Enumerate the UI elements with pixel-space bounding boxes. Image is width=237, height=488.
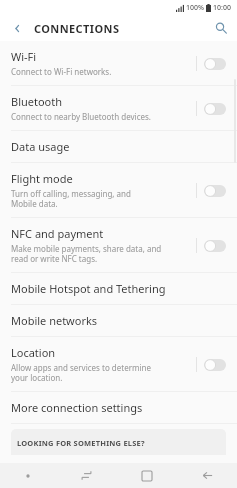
button[interactable]: Back bbox=[0, 15, 34, 41]
button[interactable]: Toggle bbox=[196, 352, 229, 376]
staticText: Turn off calling, messaging, and Mobile … bbox=[11, 188, 131, 209]
button[interactable]: Indicator bbox=[13, 463, 43, 488]
staticText: Make mobile payments, share data, and re… bbox=[11, 243, 162, 264]
staticText: Mobile Hotspot and Tethering bbox=[11, 281, 166, 296]
staticText: Wi-Fi bbox=[11, 49, 37, 64]
button[interactable]: NFC and payment bbox=[0, 218, 237, 272]
button[interactable]: Recents bbox=[69, 463, 103, 488]
button[interactable]: Mobile networks bbox=[0, 305, 237, 336]
button[interactable]: Toggle bbox=[204, 359, 226, 371]
button[interactable]: Toggle bbox=[196, 178, 229, 202]
button[interactable]: Toggle bbox=[204, 103, 226, 115]
button[interactable]: Search bbox=[205, 15, 237, 41]
button[interactable]: Toggle bbox=[204, 240, 226, 252]
staticText: Bluetooth bbox=[11, 94, 63, 109]
button[interactable]: Back bbox=[190, 463, 224, 488]
button[interactable]: Bluetooth bbox=[0, 86, 237, 130]
staticText: Connect to Wi-Fi networks. bbox=[11, 66, 112, 77]
button[interactable]: Toggle bbox=[196, 96, 229, 120]
button[interactable]: Data usage bbox=[0, 131, 237, 162]
button[interactable]: Toggle bbox=[204, 58, 226, 70]
button[interactable]: LOOKING FOR SOMETHING ELSE? bbox=[11, 429, 226, 455]
staticText: LOOKING FOR SOMETHING ELSE? bbox=[17, 438, 145, 448]
staticText: Flight mode bbox=[11, 171, 73, 186]
staticText: NFC and payment bbox=[11, 226, 104, 241]
staticText: Location bbox=[11, 345, 56, 360]
staticText: 100% bbox=[186, 3, 204, 13]
button[interactable]: Toggle bbox=[196, 51, 229, 75]
staticText: Allow apps and services to determine you… bbox=[11, 362, 151, 383]
button[interactable]: Toggle bbox=[196, 233, 229, 257]
button[interactable]: Home bbox=[130, 463, 164, 488]
button[interactable]: Toggle bbox=[204, 185, 226, 197]
staticText: CONNECTIONS bbox=[34, 21, 120, 36]
staticText: Mobile networks bbox=[11, 313, 98, 328]
button[interactable]: Mobile Hotspot and Tethering bbox=[0, 273, 237, 304]
button[interactable]: Flight mode bbox=[0, 163, 237, 217]
button[interactable]: More connection settings bbox=[0, 392, 237, 423]
staticText: Connect to nearby Bluetooth devices. bbox=[11, 111, 152, 122]
button[interactable]: Wi-Fi bbox=[0, 41, 237, 85]
staticText: 10:00 bbox=[213, 3, 231, 13]
staticText: Data usage bbox=[11, 139, 70, 154]
button[interactable]: Location bbox=[0, 337, 237, 391]
staticText: More connection settings bbox=[11, 400, 143, 415]
